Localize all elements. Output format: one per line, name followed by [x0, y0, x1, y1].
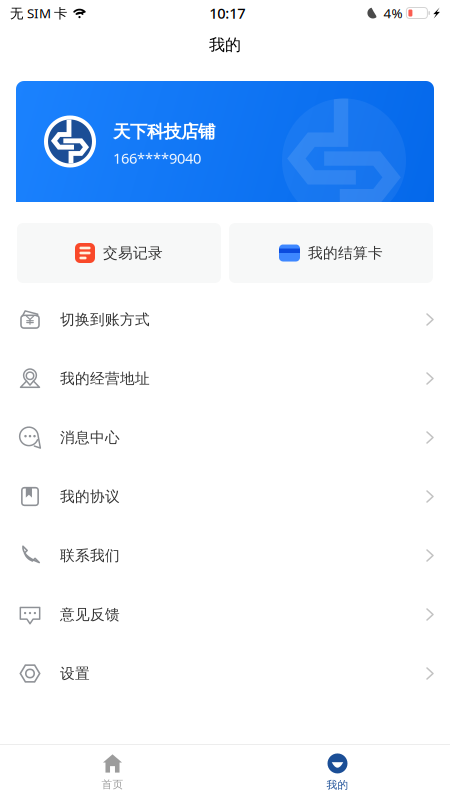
- staticText: 4%: [383, 4, 402, 22]
- button[interactable]: 首页: [0, 745, 225, 800]
- staticText: 设置: [60, 664, 90, 682]
- staticText: 天下科技店铺: [113, 121, 215, 142]
- staticText: 166****9040: [113, 148, 201, 168]
- staticText: 我的协议: [60, 487, 120, 505]
- button[interactable]: 交易记录: [17, 223, 221, 283]
- staticText: 我的结算卡: [308, 244, 383, 262]
- button[interactable]: 切换到账方式: [0, 290, 450, 349]
- button[interactable]: 设置: [0, 644, 450, 703]
- staticText: 意见反馈: [60, 605, 120, 623]
- button[interactable]: 联系我们: [0, 526, 450, 585]
- staticText: 无 SIM 卡: [10, 4, 67, 22]
- staticText: 我的: [209, 35, 241, 55]
- staticText: 10:17: [209, 3, 245, 23]
- staticText: 切换到账方式: [60, 310, 150, 328]
- button[interactable]: 意见反馈: [0, 585, 450, 644]
- staticText: 交易记录: [103, 244, 163, 262]
- staticText: 联系我们: [60, 546, 120, 564]
- button[interactable]: 我的结算卡: [229, 223, 433, 283]
- button[interactable]: 我的协议: [0, 467, 450, 526]
- staticText: 我的: [326, 778, 348, 791]
- staticText: 我的经营地址: [60, 369, 150, 387]
- button[interactable]: 我的: [225, 745, 450, 800]
- staticText: 首页: [101, 778, 123, 791]
- button[interactable]: 我的经营地址: [0, 349, 450, 408]
- staticText: 消息中心: [60, 428, 120, 446]
- button[interactable]: 消息中心: [0, 408, 450, 467]
